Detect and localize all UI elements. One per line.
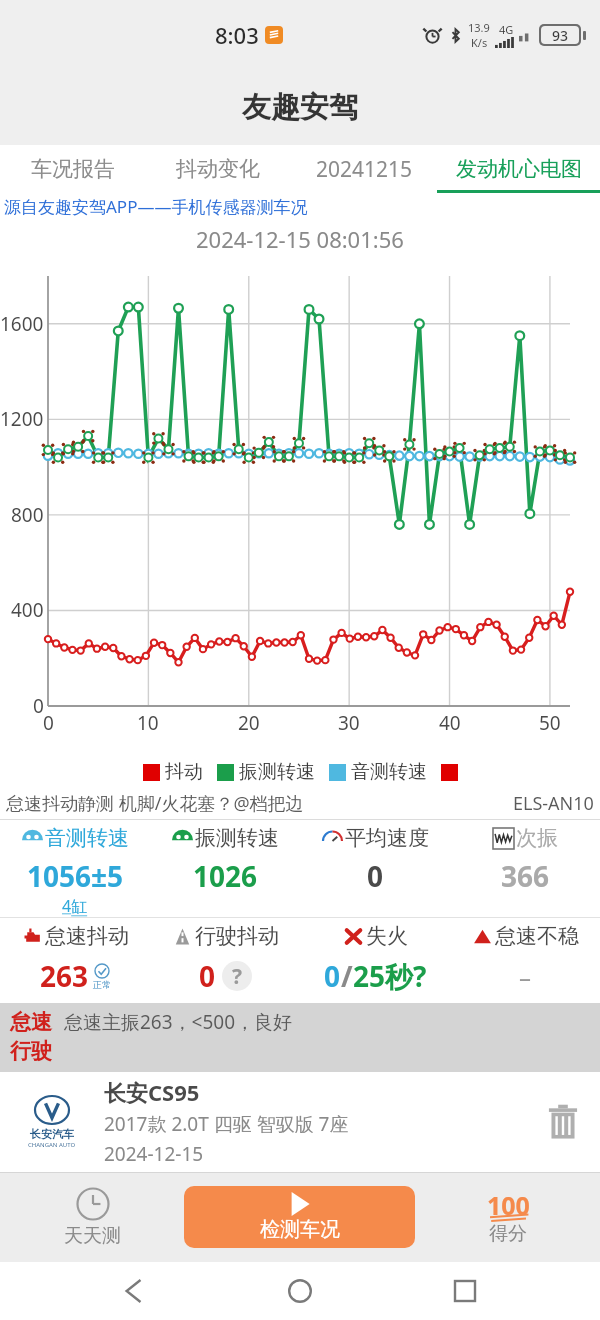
button[interactable]: 怠速不稳 (450, 923, 600, 949)
staticText: 正常 (93, 979, 111, 990)
staticText: 1026 (193, 857, 258, 895)
staticText: 怠速主振263，<500，良好 (64, 1009, 293, 1035)
staticText: 366 (501, 857, 550, 895)
button[interactable]: 次振 (450, 825, 600, 851)
staticText: 行驶抖动 (195, 923, 279, 949)
staticText: ? (232, 962, 243, 991)
staticText: 源自友趣安驾APP——手机传感器测车况 (4, 195, 308, 218)
staticText: 0 (324, 957, 341, 995)
staticText: 4G (499, 22, 514, 37)
staticText: 400 (11, 597, 44, 623)
staticText: 20 (238, 710, 260, 736)
staticText: 50 (539, 710, 561, 736)
staticText: 次振 (516, 825, 558, 851)
staticText: 1056±5 (27, 857, 124, 895)
staticText: ELS-AN10 (513, 791, 594, 816)
button[interactable]: 100 (415, 1172, 600, 1262)
staticText: 1600 (0, 311, 44, 337)
staticText: 抖动 (165, 760, 203, 784)
button[interactable]: 音测转速 (0, 825, 150, 851)
button[interactable]: 车况报告 (0, 145, 145, 193)
staticText: 25秒? (353, 957, 427, 995)
staticText: 长安CS95 (104, 1077, 200, 1107)
staticText: 振测转速 (195, 825, 279, 851)
staticText: 长安汽车 (30, 1127, 74, 1141)
staticText: 40 (439, 710, 461, 736)
button[interactable]: 振测转速 (150, 825, 300, 851)
staticText: 263 (40, 957, 89, 995)
button[interactable]: Back (105, 1262, 165, 1320)
staticText: 93 (552, 26, 569, 44)
button[interactable]: 天天测 (0, 1172, 184, 1262)
button[interactable]: Delete (534, 1093, 592, 1151)
button[interactable]: 长安汽车 (0, 1072, 600, 1172)
staticText: 音测转速 (45, 825, 129, 851)
staticText: 0 (199, 957, 216, 995)
staticText: 30 (338, 710, 360, 736)
button[interactable]: 怠速抖动 (0, 923, 150, 949)
staticText: 0 (43, 710, 54, 736)
staticText: 音测转速 (351, 760, 427, 784)
staticText: 天天测 (64, 1224, 121, 1248)
button[interactable]: 行驶抖动 (150, 923, 300, 949)
button[interactable]: 抖动变化 (145, 145, 291, 193)
button[interactable]: Recents (435, 1262, 495, 1320)
staticText: 2017款 2.0T 四驱 智驭版 7座 (104, 1111, 349, 1137)
button[interactable]: Home (270, 1262, 330, 1320)
button[interactable]: 20241215 (291, 145, 437, 193)
staticText: 振测转速 (239, 760, 315, 784)
staticText: / (341, 957, 353, 995)
staticText: 得分 (489, 1222, 527, 1246)
staticText: 1200 (0, 406, 44, 432)
staticText: CHANGAN AUTO (28, 1141, 76, 1149)
staticText: 怠速抖动 (45, 923, 129, 949)
button[interactable]: 平均速度 (300, 825, 450, 851)
staticText: 怠速抖动静测 机脚/火花塞？@档把边 (6, 791, 304, 816)
staticText: 2024-12-15 (104, 1141, 204, 1167)
staticText: 800 (11, 502, 44, 528)
staticText: – (519, 960, 531, 993)
staticText: K/s (471, 35, 488, 50)
staticText: 10 (137, 710, 159, 736)
staticText: 检测车况 (260, 1217, 340, 1242)
button[interactable]: 检测车况 (184, 1186, 415, 1248)
staticText: 平均速度 (345, 825, 429, 851)
staticText: 失火 (366, 923, 408, 949)
staticText: 怠速不稳 (495, 923, 579, 949)
staticText: 13.9 (468, 20, 490, 35)
staticText: 20241215 (316, 155, 413, 184)
staticText: 车况报告 (31, 156, 115, 182)
staticText: 友趣安驾 (242, 89, 358, 126)
staticText: 8:03 (215, 20, 259, 50)
staticText: 行驶 (10, 1038, 52, 1064)
staticText: 0 (367, 857, 384, 895)
staticText: 4缸 (62, 895, 88, 917)
staticText: 发动机心电图 (456, 156, 582, 182)
button[interactable]: 失火 (300, 923, 450, 949)
button[interactable]: 发动机心电图 (437, 145, 600, 193)
staticText: 2024-12-15 08:01:56 (196, 224, 404, 254)
staticText: 100 (487, 1188, 530, 1222)
staticText: 0 (33, 693, 44, 719)
staticText: 抖动变化 (176, 156, 260, 182)
staticText: 怠速 (10, 1009, 52, 1035)
